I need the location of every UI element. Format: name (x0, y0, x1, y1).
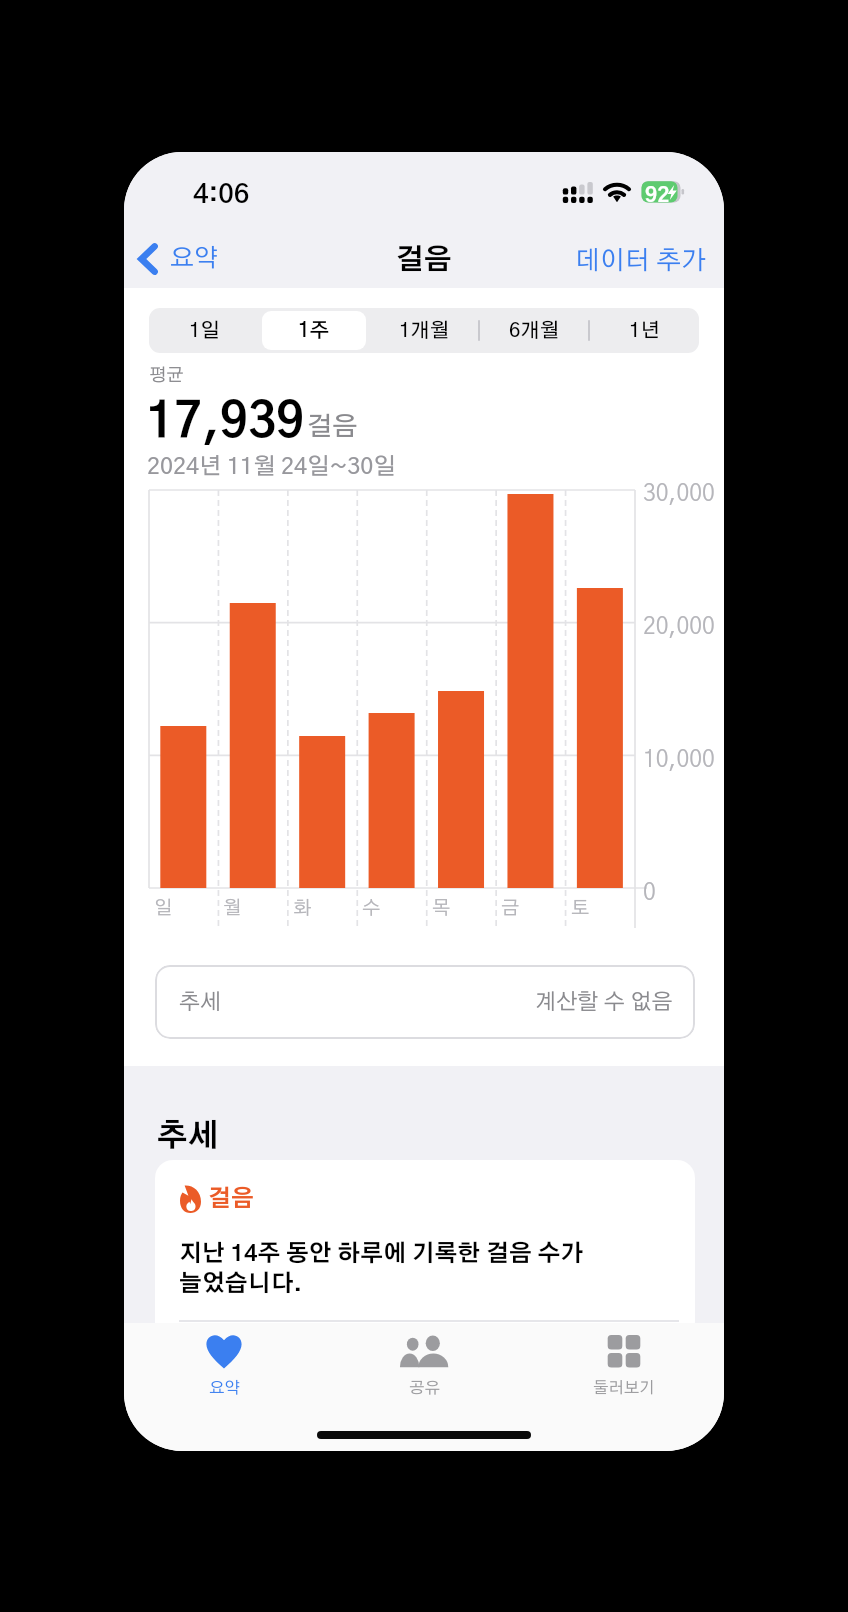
staticText: 데이터 추가 (575, 248, 707, 274)
staticText: 토 (571, 899, 590, 918)
staticText: 평균 (149, 367, 184, 385)
staticText: 추세 (157, 1121, 219, 1152)
staticText: 17,939 (146, 399, 305, 447)
staticText: 금 (501, 899, 520, 918)
staticText: 1일 (189, 321, 220, 341)
button[interactable]: 1일 (152, 311, 256, 350)
button[interactable]: 요약 (124, 1323, 324, 1409)
staticText: 20,000 (643, 616, 715, 639)
staticText: 걸음 (307, 414, 358, 440)
staticText: 1개월 (399, 321, 450, 341)
staticText: 화 (293, 899, 312, 918)
button[interactable]: 1주 (262, 311, 366, 350)
button[interactable]: Back to 요약 (133, 236, 224, 282)
staticText: 둘러보기 (593, 1380, 655, 1396)
staticText: 걸음 (208, 1188, 254, 1211)
staticText: 수 (362, 899, 381, 918)
staticText: 요약 (170, 246, 219, 271)
staticText: 1년 (629, 321, 660, 341)
button[interactable]: 추세 (155, 965, 695, 1039)
staticText: 요약 (209, 1380, 240, 1396)
button[interactable]: 걸음 (155, 1160, 695, 1340)
staticText: 10,000 (643, 749, 715, 772)
staticText: 30,000 (643, 483, 715, 506)
staticText: 지난 14주 동안 하루에 기록한 걸음 수가 늘었습니다. (179, 1243, 584, 1296)
staticText: 0 (643, 882, 656, 905)
staticText: 목 (432, 899, 451, 918)
staticText: 1주 (298, 321, 330, 341)
staticText: 4:06 (193, 181, 250, 208)
button[interactable]: 1개월 (372, 311, 476, 350)
staticText: 일 (154, 899, 173, 918)
staticText: 92 (645, 185, 670, 206)
staticText: 월 (223, 899, 242, 918)
button[interactable]: 6개월 (482, 311, 586, 350)
staticText: 공유 (409, 1380, 440, 1396)
staticText: 6개월 (509, 321, 560, 341)
button[interactable]: 데이터 추가 (565, 242, 717, 280)
staticText: 추세 (179, 991, 222, 1013)
button[interactable]: 둘러보기 (524, 1323, 724, 1409)
staticText: 계산할 수 없음 (535, 991, 673, 1013)
staticText: 걸음 (396, 247, 452, 275)
button[interactable]: 공유 (324, 1323, 524, 1409)
button[interactable]: 1년 (592, 311, 696, 350)
staticText: 2024년 11월 24일~30일 (147, 456, 396, 479)
